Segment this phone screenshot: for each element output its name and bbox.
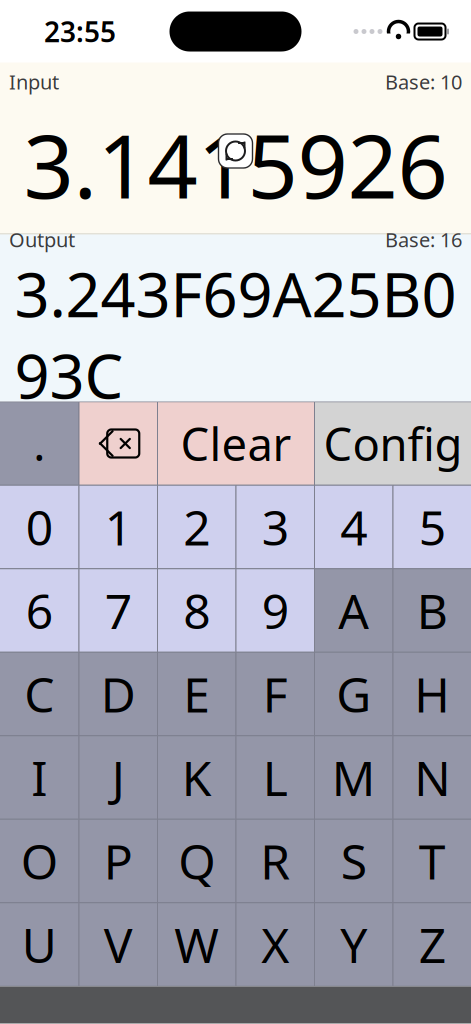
button[interactable]: 3 xyxy=(236,486,314,568)
button[interactable]: B xyxy=(393,569,471,652)
staticText: L xyxy=(263,746,288,809)
button[interactable]: 4 xyxy=(315,486,392,568)
staticText: A xyxy=(338,579,369,642)
staticText: W xyxy=(174,913,219,976)
button[interactable]: 6 xyxy=(0,569,78,652)
button[interactable]: Swap input and output bases xyxy=(218,134,252,168)
staticText: V xyxy=(104,913,133,976)
button[interactable]: D xyxy=(79,653,157,735)
button[interactable]: Backspace xyxy=(79,402,157,485)
button[interactable]: V xyxy=(79,903,157,986)
button[interactable]: S xyxy=(315,820,392,902)
button[interactable]: Z xyxy=(393,903,471,986)
staticText: J xyxy=(112,746,125,809)
staticText: Base: 16 xyxy=(385,226,462,253)
staticText: 7 xyxy=(105,579,132,642)
staticText: X xyxy=(261,913,289,976)
staticText: D xyxy=(101,662,136,726)
staticText: M xyxy=(332,746,376,809)
staticText: N xyxy=(414,746,450,809)
button[interactable]: 8 xyxy=(158,569,235,652)
button[interactable]: F xyxy=(236,653,314,735)
button[interactable]: . xyxy=(0,402,78,485)
button[interactable]: J xyxy=(79,736,157,819)
staticText: 3.243F69A25B093C xyxy=(14,253,456,416)
staticText: Y xyxy=(340,913,367,976)
staticText: C xyxy=(24,662,54,726)
button[interactable]: 5 xyxy=(393,486,471,568)
button[interactable]: 7 xyxy=(79,569,157,652)
button[interactable]: W xyxy=(158,903,235,986)
staticText: 9 xyxy=(262,579,289,642)
staticText: Output xyxy=(9,226,75,253)
button[interactable]: I xyxy=(0,736,78,819)
staticText: F xyxy=(263,662,288,726)
staticText: 5 xyxy=(419,495,446,559)
staticText: 8 xyxy=(183,579,210,642)
staticText: H xyxy=(414,662,450,726)
button[interactable]: 0 xyxy=(0,486,78,568)
button[interactable]: 9 xyxy=(236,569,314,652)
staticText: Config xyxy=(323,413,462,474)
staticText: 3 xyxy=(262,495,289,559)
staticText: T xyxy=(419,829,446,893)
staticText: Base: 10 xyxy=(385,68,462,95)
staticText: 23:55 xyxy=(44,13,116,50)
button[interactable]: T xyxy=(393,820,471,902)
staticText: R xyxy=(260,829,290,893)
button[interactable]: A xyxy=(315,569,392,652)
staticText: 2 xyxy=(183,495,210,559)
button[interactable]: O xyxy=(0,820,78,902)
button[interactable]: 2 xyxy=(158,486,235,568)
staticText: 1 xyxy=(105,495,132,559)
button[interactable]: Q xyxy=(158,820,235,902)
staticText: Z xyxy=(419,913,446,976)
staticText: 0 xyxy=(26,495,53,559)
staticText: 3.1415926 xyxy=(23,106,447,223)
staticText: E xyxy=(183,662,210,726)
staticText: G xyxy=(336,662,371,726)
button[interactable]: L xyxy=(236,736,314,819)
button[interactable]: R xyxy=(236,820,314,902)
button[interactable]: H xyxy=(393,653,471,735)
button[interactable]: U xyxy=(0,903,78,986)
staticText: S xyxy=(341,829,367,893)
button[interactable]: E xyxy=(158,653,235,735)
staticText: I xyxy=(31,746,47,809)
button[interactable]: Y xyxy=(315,903,392,986)
staticText: 6 xyxy=(26,579,53,642)
staticText: Clear xyxy=(180,413,291,474)
button[interactable]: G xyxy=(315,653,392,735)
button[interactable]: 1 xyxy=(79,486,157,568)
staticText: B xyxy=(417,579,448,642)
staticText: K xyxy=(182,746,212,809)
staticText: P xyxy=(104,829,133,893)
button[interactable]: K xyxy=(158,736,235,819)
button[interactable]: M xyxy=(315,736,392,819)
button[interactable]: Config xyxy=(315,402,471,485)
staticText: Input xyxy=(9,68,59,95)
button[interactable]: P xyxy=(79,820,157,902)
staticText: U xyxy=(22,913,57,976)
button[interactable]: C xyxy=(0,653,78,735)
staticText: Q xyxy=(178,829,215,893)
button[interactable]: N xyxy=(393,736,471,819)
staticText: 4 xyxy=(340,495,367,559)
button[interactable]: Clear xyxy=(158,402,314,485)
staticText: O xyxy=(21,829,58,893)
button[interactable]: X xyxy=(236,903,314,986)
staticText: . xyxy=(33,413,45,474)
